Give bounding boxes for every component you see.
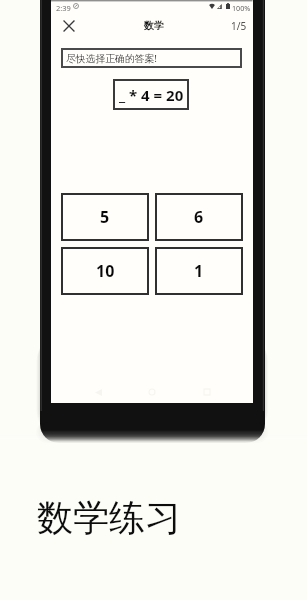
button[interactable]: 6 [155,193,243,241]
button[interactable]: 10 [61,247,149,295]
staticText: 1/5 [231,19,247,33]
staticText: 5 [100,206,110,228]
staticText: 数学 [144,19,164,32]
button[interactable]: 1 [155,247,243,295]
staticText: 10 [96,260,115,282]
staticText: 数学练习 [37,495,181,540]
button[interactable]: Back [90,384,106,400]
staticText: 1 [194,260,204,282]
button[interactable]: Close [59,16,79,36]
staticText: 100% [232,3,251,13]
staticText: 尽快选择正确的答案! [66,52,157,65]
button[interactable]: 尽快选择正确的答案! [61,48,242,68]
button[interactable]: 5 [61,193,149,241]
staticText: 2:39 [56,3,71,13]
staticText: _ * 4 = 20 [119,85,184,105]
staticText: 6 [194,206,204,228]
